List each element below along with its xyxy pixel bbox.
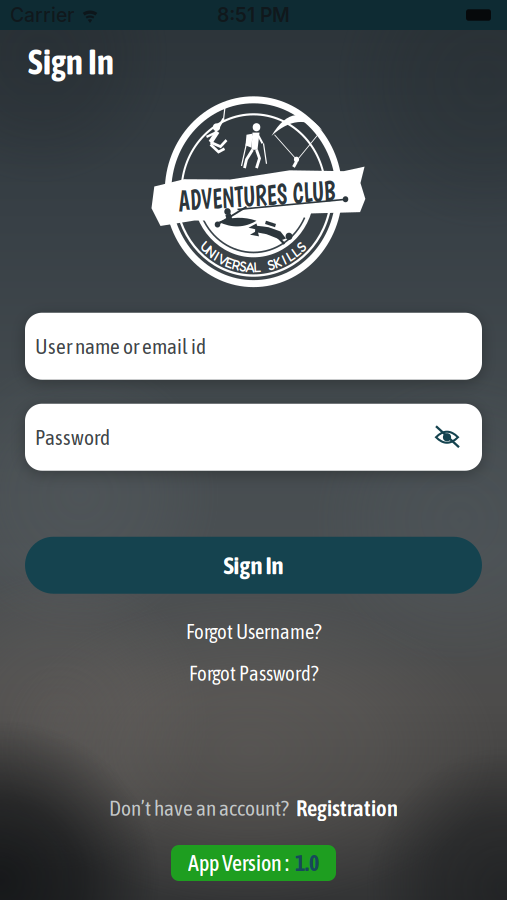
staticText: K: [273, 249, 281, 265]
staticText: S: [239, 253, 246, 269]
staticText: App Version :: [188, 850, 289, 876]
staticText: Sign In: [28, 42, 114, 82]
button[interactable]: Sign In: [25, 537, 482, 594]
staticText: Sign In: [223, 551, 283, 579]
staticText: Forgot Password?: [189, 661, 318, 685]
staticText: 8:51 PM: [217, 3, 290, 27]
button[interactable]: Show password: [434, 426, 460, 448]
staticText: Forgot Username?: [186, 620, 321, 643]
staticText: A: [245, 254, 254, 270]
button[interactable]: App Version :: [171, 845, 336, 881]
staticText: 1.0: [295, 850, 319, 876]
staticText: Registration: [296, 795, 398, 821]
staticText: I: [215, 243, 218, 259]
staticText: N: [207, 239, 216, 255]
button[interactable]: User name or email id: [25, 313, 482, 380]
staticText: L: [292, 239, 299, 255]
staticText: Don’t have an account?: [109, 796, 289, 820]
staticText: S: [267, 251, 274, 268]
button[interactable]: Registration: [296, 795, 398, 821]
staticText: U: [201, 235, 210, 251]
staticText: User name or email id: [35, 334, 206, 358]
button[interactable]: Password: [25, 404, 482, 471]
staticText: ADVENTURES CLUB: [163, 179, 350, 211]
staticText: E: [225, 249, 233, 265]
button[interactable]: Forgot Password?: [189, 661, 318, 685]
staticText: L: [253, 254, 260, 270]
staticText: I: [282, 247, 285, 263]
button[interactable]: Forgot Username?: [186, 620, 321, 643]
staticText: Carrier: [10, 3, 74, 27]
staticText: S: [298, 235, 305, 251]
staticText: R: [232, 251, 240, 268]
staticText: L: [287, 243, 294, 259]
staticText: [262, 253, 265, 269]
staticText: V: [218, 247, 228, 263]
staticText: Password: [35, 425, 110, 449]
